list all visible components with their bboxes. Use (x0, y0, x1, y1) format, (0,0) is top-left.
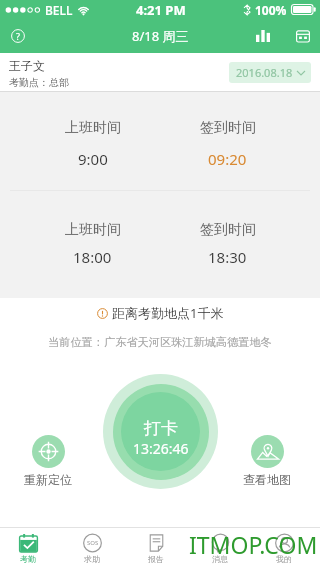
staticText: 上班时间 (65, 221, 121, 239)
button[interactable]: SOS (60, 528, 124, 569)
staticText: 签到时间 (200, 119, 256, 137)
staticText: 09:20 (208, 149, 247, 169)
staticText: BELL (45, 2, 73, 18)
staticText: 100% (255, 2, 287, 18)
staticText: 上班时间 (65, 119, 121, 137)
staticText: 我的 (276, 554, 292, 564)
staticText: 签到时间 (200, 221, 256, 239)
staticText: ? (16, 30, 20, 42)
staticText: 报告 (148, 554, 164, 564)
button[interactable]: Statistics (249, 22, 277, 50)
button[interactable]: 考勤 (0, 528, 60, 569)
staticText: 距离考勤地点1千米 (112, 304, 224, 322)
staticText: 8/18 周三 (132, 27, 189, 45)
staticText: 9:00 (78, 149, 108, 169)
staticText: 求助 (84, 554, 100, 564)
staticText: 当前位置：广东省天河区珠江新城高德置地冬 (48, 335, 272, 349)
staticText: 打卡 (144, 418, 178, 439)
staticText: SOS (87, 539, 99, 547)
button[interactable]: 报告 (124, 528, 188, 569)
staticText: 18:00 (73, 247, 112, 267)
staticText: 王子文 (9, 58, 45, 73)
button[interactable]: 查看地图 (240, 435, 294, 487)
button[interactable]: 我的 (252, 528, 316, 569)
staticText: 查看地图 (243, 472, 291, 487)
staticText: 考勤 (20, 554, 36, 564)
staticText: 18:30 (208, 247, 247, 267)
staticText: ITMOP.COM (189, 529, 318, 560)
staticText: 4:21 PM (136, 1, 186, 19)
staticText: 13:26:46 (133, 439, 189, 458)
staticText: 考勤点：总部 (9, 76, 69, 89)
button[interactable]: 打卡 (121, 392, 200, 471)
staticText: 重新定位 (24, 472, 72, 487)
staticText: 2016.08.18 (236, 65, 293, 80)
staticText: 消息 (212, 554, 228, 564)
button[interactable]: 消息 (188, 528, 252, 569)
button[interactable]: Calendar (289, 22, 317, 50)
button[interactable]: Help (4, 22, 32, 50)
button[interactable]: 重新定位 (21, 435, 75, 487)
button[interactable]: 2016.08.18 (229, 62, 311, 83)
